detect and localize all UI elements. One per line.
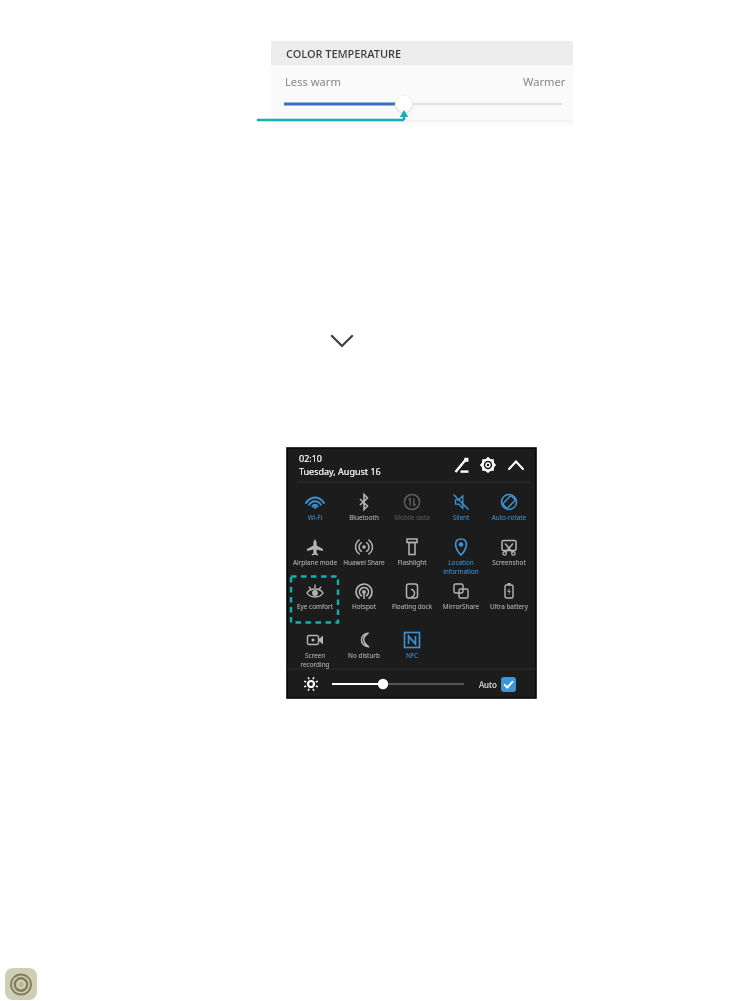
staticText: Flashlight — [380, 558, 444, 567]
button[interactable]: Screenshot — [477, 536, 541, 569]
staticText: 02:10 — [299, 452, 323, 464]
staticText: Screen recording — [283, 651, 347, 669]
button[interactable]: Mobile data — [380, 491, 444, 524]
button[interactable]: Brightness slider — [329, 674, 467, 694]
button[interactable]: Airplane mode — [283, 536, 347, 569]
staticText: Warmer — [523, 74, 566, 89]
staticText: Huawei Share — [332, 558, 396, 567]
staticText: Floating dock — [380, 602, 444, 611]
staticText: Auto — [479, 679, 497, 690]
button[interactable]: Ultra battery — [477, 580, 541, 613]
staticText: Ultra battery — [477, 602, 541, 611]
staticText: MirrorShare — [429, 602, 493, 611]
button[interactable]: Hotspot — [332, 580, 396, 613]
button[interactable]: Expand — [327, 328, 357, 358]
button[interactable]: Eye comfort — [283, 580, 347, 613]
staticText: No disturb — [332, 651, 396, 660]
staticText: Silent — [429, 513, 493, 522]
staticText: Location information — [429, 558, 493, 576]
staticText: Bluetooth — [332, 513, 396, 522]
staticText: COLOR TEMPERATURE — [286, 46, 402, 61]
button[interactable]: No disturb — [332, 629, 396, 662]
button[interactable]: Collapse — [505, 454, 527, 476]
staticText: Auto-rotate — [477, 513, 541, 522]
staticText: Eye comfort — [283, 602, 347, 611]
staticText: Wi-Fi — [283, 513, 347, 522]
staticText: Less warm — [285, 74, 341, 89]
button[interactable]: Edit — [450, 454, 472, 476]
button[interactable]: Floating dock — [380, 580, 444, 613]
staticText: Tuesday, August 16 — [299, 465, 381, 477]
button[interactable]: Screen recording — [283, 629, 347, 662]
staticText: Screenshot — [477, 558, 541, 567]
button[interactable]: Settings — [477, 454, 499, 476]
button[interactable]: Location information — [429, 536, 493, 569]
button[interactable]: Huawei Share — [332, 536, 396, 569]
button[interactable]: Colour temperature slider — [284, 93, 562, 115]
button[interactable]: NFC — [380, 629, 444, 662]
staticText: Mobile data — [380, 513, 444, 522]
staticText: Hotspot — [332, 602, 396, 611]
button[interactable]: Bluetooth — [332, 491, 396, 524]
button[interactable]: Silent — [429, 491, 493, 524]
button[interactable]: MirrorShare — [429, 580, 493, 613]
button[interactable]: Flashlight — [380, 536, 444, 569]
button[interactable]: Auto brightness — [501, 677, 516, 692]
button[interactable]: Auto-rotate — [477, 491, 541, 524]
staticText: NFC — [380, 651, 444, 660]
button[interactable]: App icon — [5, 968, 37, 1000]
staticText: Airplane mode — [283, 558, 347, 567]
button[interactable]: Wi-Fi — [283, 491, 347, 524]
